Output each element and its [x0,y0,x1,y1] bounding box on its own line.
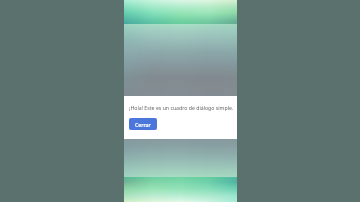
staticText: ¡Hola! Este es un cuadro de diálogo simp… [129,104,234,111]
staticText: Cerrar [135,121,151,128]
button[interactable]: Cerrar [129,118,157,130]
